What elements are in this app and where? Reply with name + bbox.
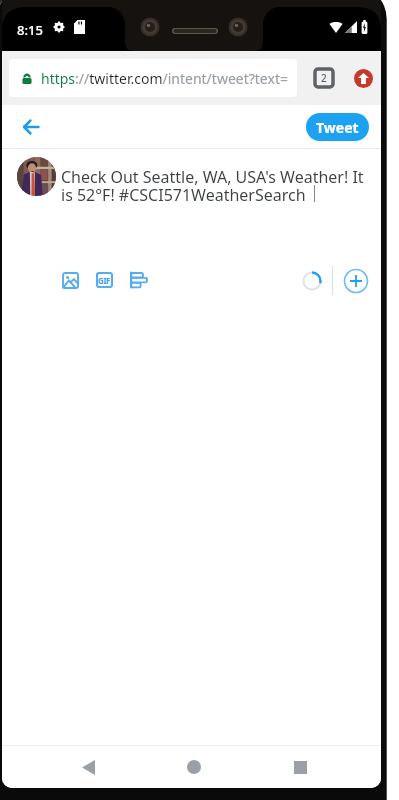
button[interactable]: Tabs: [315, 69, 333, 87]
button[interactable]: Add photo: [58, 268, 82, 292]
button[interactable]: Home: [178, 751, 210, 783]
staticText: 2: [321, 71, 327, 85]
button[interactable]: [17, 157, 56, 196]
staticText: GIF: [98, 275, 111, 286]
button[interactable]: Tweet: [306, 113, 369, 141]
staticText: Tweet: [316, 118, 359, 137]
staticText: Check Out Seattle, WA, USA's Weather! It…: [61, 166, 367, 206]
button[interactable]: Recents: [284, 751, 316, 783]
button[interactable]: Add poll: [126, 268, 150, 292]
button[interactable]: Back: [72, 751, 104, 783]
button[interactable]: Add tweet: [343, 268, 369, 294]
button[interactable]: Menu: [354, 69, 373, 88]
staticText: 8:15: [17, 21, 43, 39]
button[interactable]: Back: [16, 112, 46, 142]
staticText: https://twitter.com/intent/tweet?text=: [41, 69, 288, 88]
button[interactable]: Add GIF: [92, 268, 116, 292]
button[interactable]: https://twitter.com/intent/tweet?text=: [9, 59, 297, 97]
